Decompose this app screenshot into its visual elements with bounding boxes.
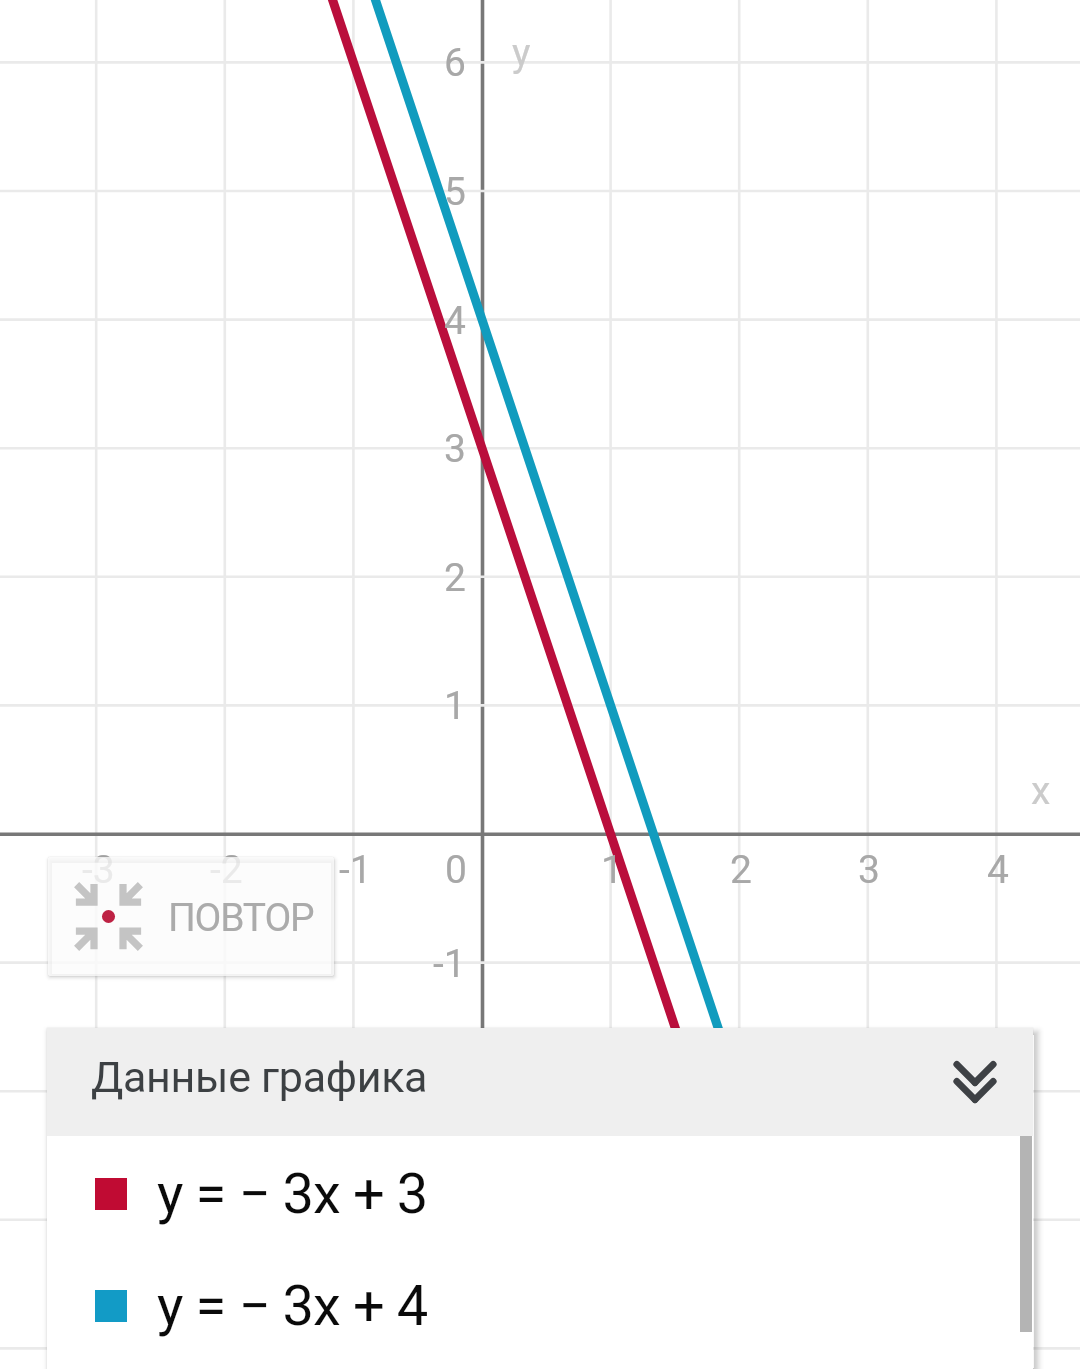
staticText: -2 — [210, 847, 243, 893]
staticText: 4 — [987, 847, 1009, 893]
button[interactable]: ПОВТОР — [48, 857, 334, 976]
staticText: y — [512, 30, 531, 76]
staticText: 5 — [444, 169, 466, 215]
staticText: y = − 3x + 4 — [157, 1273, 428, 1339]
staticText: 6 — [444, 40, 466, 86]
staticText: 4 — [444, 298, 466, 344]
button[interactable]: Свернуть — [917, 1028, 1033, 1136]
staticText: 1 — [601, 847, 623, 893]
staticText: 2 — [730, 847, 752, 893]
staticText: 2 — [444, 555, 466, 601]
staticText: -1 — [433, 941, 466, 987]
staticText: y = − 3x + 3 — [157, 1161, 428, 1227]
staticText: -3 — [82, 847, 115, 893]
button[interactable]: y = − 3x + 3 — [47, 1138, 1033, 1250]
button[interactable]: y = − 3x + 4 — [47, 1250, 1033, 1362]
staticText: Данные графика — [91, 1052, 428, 1102]
staticText: x — [1031, 768, 1051, 814]
staticText: -1 — [339, 847, 372, 893]
staticText: 0 — [445, 847, 467, 893]
staticText: 3 — [444, 426, 466, 472]
staticText: 3 — [858, 847, 880, 893]
staticText: 1 — [444, 683, 466, 729]
staticText: ПОВТОР — [168, 895, 314, 941]
button[interactable]: Данные графика — [47, 1028, 1033, 1136]
